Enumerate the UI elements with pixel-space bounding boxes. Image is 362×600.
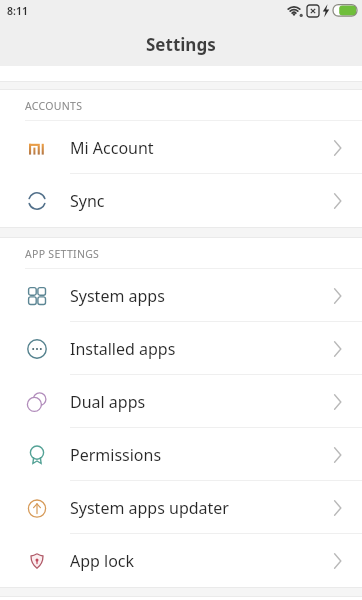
staticText: App lock (70, 550, 135, 572)
staticText: Mi Account (70, 137, 154, 159)
staticText: Settings (146, 33, 216, 56)
staticText: ACCOUNTS (25, 99, 83, 113)
staticText: Sync (70, 190, 105, 212)
button[interactable]: Sync (0, 174, 362, 227)
staticText: 8:11 (7, 4, 28, 18)
button[interactable]: System apps updater (0, 481, 362, 534)
button[interactable]: Mi Account (0, 121, 362, 174)
staticText: APP SETTINGS (25, 247, 100, 261)
button[interactable]: Dual apps (0, 375, 362, 428)
staticText: Installed apps (70, 338, 176, 360)
staticText: Permissions (70, 444, 162, 466)
staticText: System apps updater (70, 497, 229, 519)
staticText: Dual apps (70, 391, 146, 413)
button[interactable]: Permissions (0, 428, 362, 481)
button[interactable]: App lock (0, 534, 362, 587)
button[interactable]: Installed apps (0, 322, 362, 375)
staticText: System apps (70, 285, 165, 307)
button[interactable]: System apps (0, 269, 362, 322)
